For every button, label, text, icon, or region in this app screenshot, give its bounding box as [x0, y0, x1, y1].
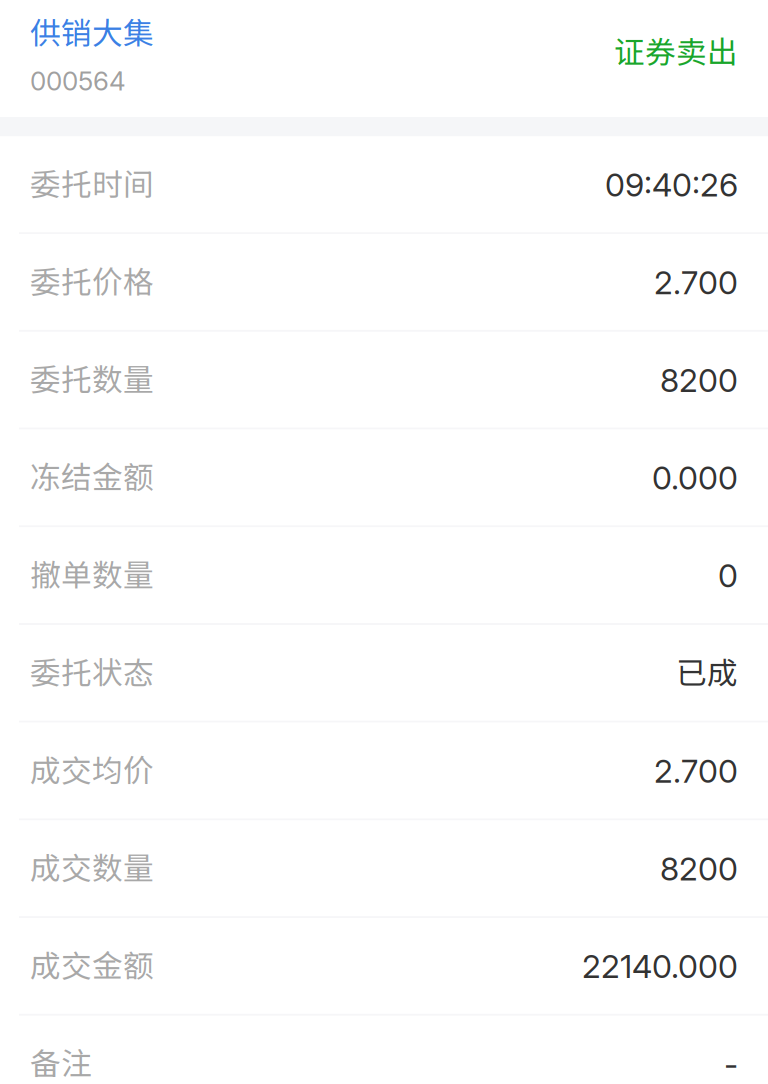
button[interactable]: 冻结金额: [0, 430, 768, 527]
staticText: 09:40:26: [605, 165, 738, 204]
staticText: 成交金额: [30, 942, 154, 986]
button[interactable]: 委托状态: [0, 625, 768, 723]
button[interactable]: 委托数量: [0, 332, 768, 430]
staticText: 2.700: [654, 752, 738, 790]
button[interactable]: 备注: [0, 1016, 768, 1084]
staticText: 冻结金额: [30, 453, 154, 498]
button[interactable]: 成交数量: [0, 820, 768, 918]
staticText: -: [724, 1045, 738, 1083]
button[interactable]: 委托时间: [0, 136, 768, 234]
staticText: 已成: [676, 649, 738, 693]
staticText: 委托时间: [30, 160, 154, 204]
staticText: 成交均价: [30, 746, 154, 791]
staticText: 证券卖出: [614, 28, 738, 72]
staticText: 2.700: [654, 263, 738, 302]
button[interactable]: 撤单数量: [0, 527, 768, 625]
button[interactable]: 成交金额: [0, 918, 768, 1016]
staticText: 委托数量: [30, 355, 154, 400]
staticText: 撤单数量: [30, 551, 154, 595]
staticText: 成交数量: [30, 844, 154, 888]
button[interactable]: 供销大集: [30, 9, 154, 53]
staticText: 委托价格: [30, 258, 154, 302]
staticText: 0.000: [652, 459, 738, 497]
staticText: 供销大集: [30, 9, 154, 53]
button[interactable]: 委托价格: [0, 234, 768, 332]
button[interactable]: 成交均价: [0, 723, 768, 820]
staticText: 000564: [30, 65, 126, 97]
staticText: 8200: [660, 361, 738, 400]
staticText: 8200: [660, 849, 738, 888]
staticText: 备注: [30, 1039, 92, 1084]
staticText: 22140.000: [582, 947, 738, 986]
staticText: 0: [718, 556, 738, 595]
staticText: 委托状态: [30, 649, 154, 693]
